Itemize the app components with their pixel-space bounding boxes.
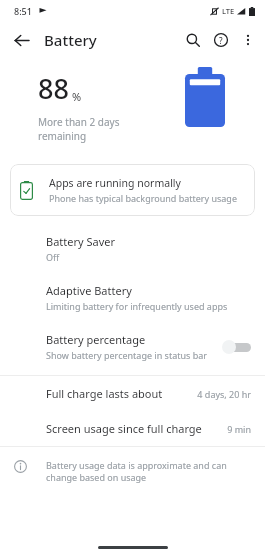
button[interactable]: Back [6,25,36,55]
staticText: 4 days, 20 hr [197,388,251,400]
button[interactable]: More options [235,27,261,53]
button[interactable]: Battery percentage [0,328,265,365]
staticText: More than 2 days remaining [38,115,120,143]
staticText: Show battery percentage in status bar [46,349,207,361]
button[interactable]: Screen usage since full charge [0,411,265,446]
staticText: LTE [222,6,235,16]
staticText: Adaptive Battery [46,283,132,298]
staticText: Apps are running normally [49,176,181,190]
button[interactable]: Help [207,26,235,54]
button[interactable]: Search [179,26,207,54]
staticText: Screen usage since full charge [46,421,227,436]
button[interactable]: Apps are running normally [10,164,255,216]
button[interactable]: Battery Saver [0,230,265,267]
staticText: Battery usage data is approximate and ca… [46,459,249,484]
staticText: Battery Saver [46,234,116,249]
staticText: Phone has typical background battery usa… [49,192,237,204]
staticText: 88 [38,70,69,107]
staticText: 9 min [227,423,251,435]
staticText: Off [46,251,60,263]
staticText: 8:51 [14,5,32,17]
staticText: Battery percentage [46,332,146,347]
button[interactable]: Full charge lasts about [0,376,265,411]
staticText: Battery [44,30,97,50]
staticText: Limiting battery for infrequently used a… [46,300,228,312]
button[interactable]: Adaptive Battery [0,279,265,316]
staticText: ? [219,35,223,46]
staticText: Full charge lasts about [46,386,197,401]
staticText: % [72,89,82,104]
